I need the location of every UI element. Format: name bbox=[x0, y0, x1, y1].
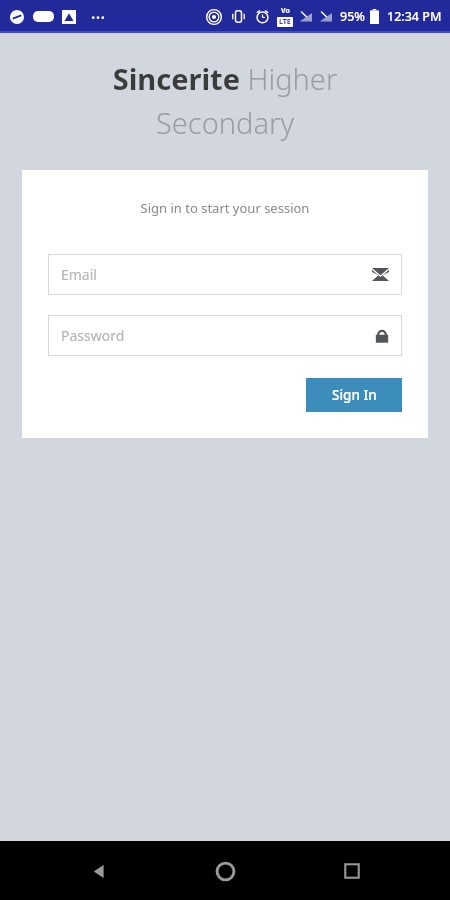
button[interactable]: Home bbox=[196, 842, 254, 900]
button[interactable]: Email bbox=[48, 254, 402, 295]
button[interactable]: Recent apps bbox=[323, 842, 381, 900]
staticText: Sign In bbox=[332, 386, 377, 404]
staticText: oYo bbox=[37, 12, 50, 22]
staticText: 95% bbox=[340, 8, 365, 25]
button[interactable]: Password bbox=[48, 315, 402, 356]
staticText: Vo bbox=[281, 6, 290, 16]
staticText: Sincerite Higher Secondary bbox=[46, 59, 404, 142]
staticText: Sign in to start your session bbox=[48, 199, 402, 217]
button[interactable]: Sign In bbox=[306, 378, 402, 412]
button[interactable]: Back bbox=[69, 842, 127, 900]
staticText: Password bbox=[61, 326, 375, 345]
staticText: 12:34 PM bbox=[387, 8, 442, 25]
staticText: LTE bbox=[279, 17, 291, 27]
staticText: Email bbox=[61, 265, 372, 284]
other: Email bbox=[372, 268, 389, 281]
other: Password bbox=[375, 328, 389, 344]
